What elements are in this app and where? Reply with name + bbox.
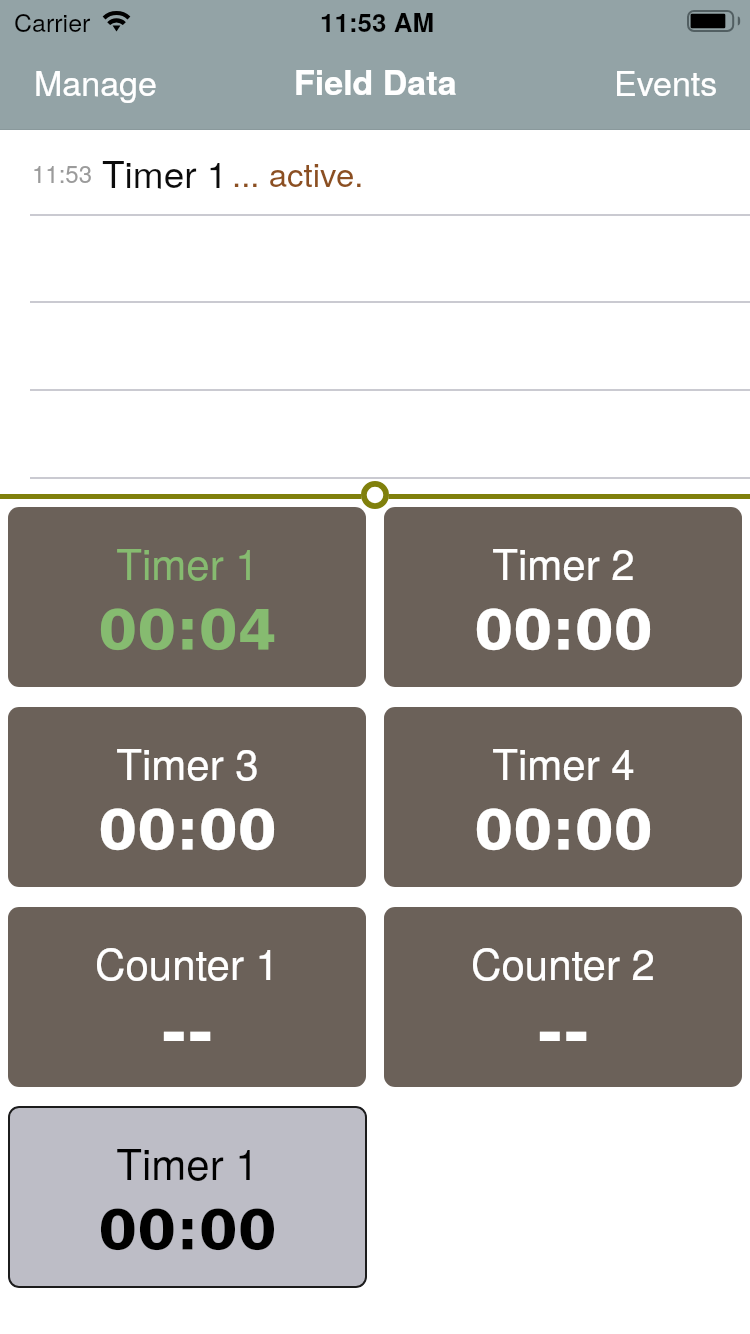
staticText: Counter 2 [471, 932, 655, 992]
button[interactable] [0, 304, 750, 390]
staticText: Events [614, 57, 718, 106]
button[interactable] [0, 216, 750, 302]
staticText: -- [160, 996, 214, 1065]
button[interactable]: 11:53 [0, 130, 750, 214]
button[interactable]: Counter 1 [8, 907, 366, 1087]
button[interactable]: Resize panes [357, 477, 393, 513]
staticText: Timer 1 [116, 1132, 259, 1192]
staticText: Timer 2 [492, 532, 635, 592]
staticText: 00:04 [98, 597, 277, 662]
other: Wi-Fi signal [102, 11, 131, 32]
staticText: 00:00 [98, 797, 277, 862]
staticText: Carrier [14, 3, 91, 39]
staticText: Timer 3 [116, 732, 259, 792]
staticText: -- [536, 996, 590, 1065]
staticText: ... active. [232, 149, 364, 196]
staticText: Timer 1 [102, 146, 228, 199]
staticText: Manage [34, 57, 157, 106]
button[interactable]: Timer 1 [8, 1106, 367, 1288]
button[interactable]: Timer 2 [384, 507, 742, 687]
staticText: 00:00 [474, 797, 653, 862]
staticText: 00:00 [474, 597, 653, 662]
staticText: 11:53 [32, 155, 93, 189]
button[interactable]: Timer 1 [8, 507, 366, 687]
staticText: 00:00 [98, 1197, 277, 1262]
staticText: Timer 4 [492, 732, 635, 792]
staticText: 11:53 AM [320, 3, 435, 40]
button[interactable]: Timer 3 [8, 707, 366, 887]
button[interactable]: Events [588, 51, 750, 112]
button[interactable]: Counter 2 [384, 907, 742, 1087]
button[interactable] [0, 392, 750, 478]
staticText: Timer 1 [116, 532, 259, 592]
staticText: Field Data [294, 57, 457, 106]
button[interactable]: Manage [0, 51, 183, 112]
staticText: Counter 1 [95, 932, 279, 992]
other: Battery full [687, 10, 739, 32]
button[interactable]: Timer 4 [384, 707, 742, 887]
